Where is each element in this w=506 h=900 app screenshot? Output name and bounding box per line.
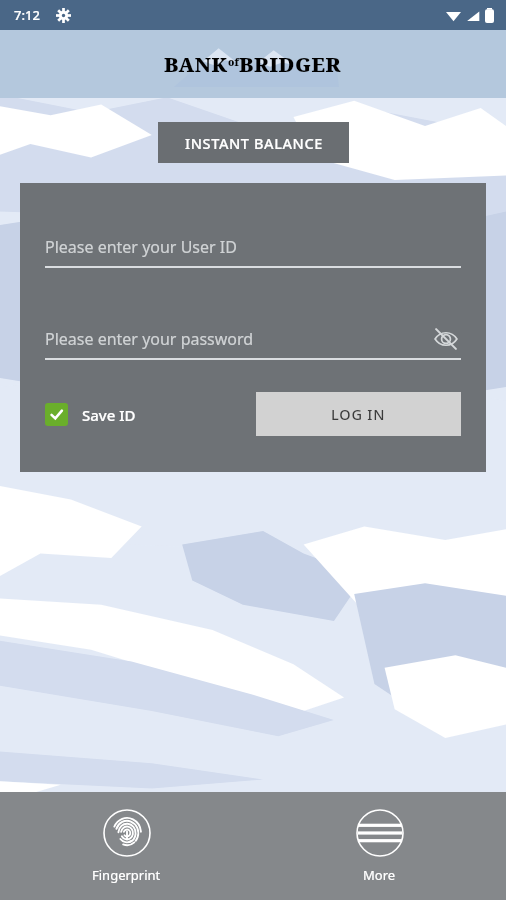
staticText: Save ID xyxy=(82,405,136,425)
staticText: Please enter your User ID xyxy=(45,236,237,258)
button[interactable]: INSTANT BALANCE xyxy=(158,122,349,163)
button[interactable]: Please enter your User ID xyxy=(45,228,461,266)
button[interactable]: Please enter your password xyxy=(45,320,461,358)
staticText: INSTANT BALANCE xyxy=(185,133,323,153)
staticText: Please enter your password xyxy=(45,328,254,350)
other: More xyxy=(356,809,404,857)
button[interactable]: Show password xyxy=(431,324,461,354)
button[interactable]: LOG IN xyxy=(256,392,461,436)
staticText: 7:12 xyxy=(14,6,40,24)
button[interactable]: More xyxy=(253,801,506,892)
other: Fingerprint xyxy=(103,809,151,857)
button[interactable]: Fingerprint xyxy=(0,801,253,892)
staticText: of xyxy=(228,55,239,69)
staticText: BRIDGER xyxy=(239,51,342,78)
staticText: BANK xyxy=(164,51,228,78)
staticText: Fingerprint xyxy=(92,866,161,884)
staticText: More xyxy=(363,866,396,884)
button[interactable]: Save ID xyxy=(45,403,136,426)
staticText: LOG IN xyxy=(331,404,386,424)
